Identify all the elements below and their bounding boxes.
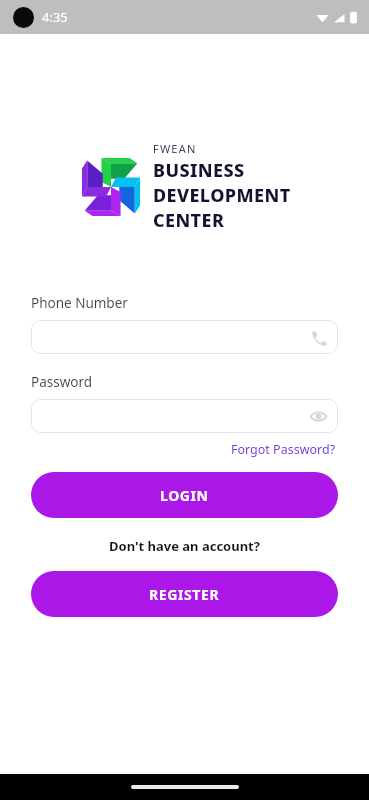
other: Show password bbox=[310, 408, 327, 425]
button[interactable]: Phone number bbox=[31, 320, 338, 354]
staticText: Password bbox=[31, 373, 93, 391]
staticText: DEVELOPMENT bbox=[153, 183, 291, 208]
button[interactable]: REGISTER bbox=[31, 571, 338, 617]
staticText: BUSINESS bbox=[153, 158, 245, 183]
button[interactable]: LOGIN bbox=[31, 472, 338, 518]
staticText: CENTER bbox=[153, 208, 225, 233]
staticText: LOGIN bbox=[160, 486, 209, 505]
staticText: FWEAN bbox=[153, 141, 197, 156]
button[interactable]: Show password bbox=[31, 399, 338, 433]
staticText: REGISTER bbox=[149, 585, 220, 604]
staticText: 4:35 bbox=[42, 8, 68, 26]
staticText: Don't have an account? bbox=[31, 537, 338, 555]
staticText: Phone Number bbox=[31, 294, 128, 312]
other: Phone number bbox=[310, 329, 327, 346]
button[interactable]: Forgot Password? bbox=[229, 439, 338, 460]
